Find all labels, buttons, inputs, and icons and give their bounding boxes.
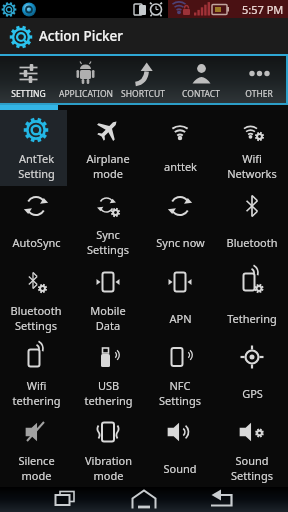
- staticText: Airplane mode: [86, 151, 130, 181]
- staticText: Sync Settings: [87, 227, 129, 257]
- staticText: AntTek Setting: [18, 151, 55, 181]
- button[interactable]: OTHER: [230, 56, 288, 103]
- staticText: USB tethering: [84, 378, 133, 408]
- staticText: GPS: [242, 386, 263, 401]
- staticText: APN: [169, 311, 192, 326]
- button[interactable]: CONTACT: [172, 56, 230, 103]
- button[interactable]: Sound Settings: [216, 412, 288, 487]
- staticText: anttek: [164, 159, 197, 174]
- staticText: NFC Settings: [159, 378, 201, 408]
- button[interactable]: AntTek Setting: [0, 110, 72, 186]
- button[interactable]: APN: [144, 262, 216, 337]
- staticText: Mobile Data: [90, 303, 126, 333]
- staticText: APPLICATION: [59, 88, 113, 100]
- staticText: Vibration mode: [85, 453, 132, 483]
- button[interactable]: AutoSync: [0, 186, 72, 262]
- button[interactable]: Wifi tethering: [0, 337, 72, 412]
- button[interactable]: [96, 487, 192, 512]
- button[interactable]: SHORTCUT: [114, 56, 172, 103]
- staticText: Wifi Networks: [227, 151, 277, 181]
- button[interactable]: Mobile Data: [72, 262, 144, 337]
- button[interactable]: Sync Settings: [72, 186, 144, 262]
- button[interactable]: Tethering: [216, 262, 288, 337]
- button[interactable]: Bluetooth: [216, 186, 288, 262]
- button[interactable]: NFC Settings: [144, 337, 216, 412]
- staticText: Bluetooth: [226, 235, 278, 250]
- button[interactable]: Sync now: [144, 186, 216, 262]
- button[interactable]: Sound: [144, 412, 216, 487]
- staticText: CONTACT: [182, 88, 220, 100]
- staticText: 5:57 PM: [242, 2, 284, 17]
- staticText: Action Picker: [39, 27, 124, 45]
- button[interactable]: [192, 487, 288, 512]
- button[interactable]: Vibration mode: [72, 412, 144, 487]
- button[interactable]: anttek: [144, 110, 216, 186]
- button[interactable]: Bluetooth Settings: [0, 262, 72, 337]
- staticText: OTHER: [245, 88, 273, 100]
- staticText: SHORTCUT: [121, 88, 165, 100]
- button[interactable]: [0, 487, 96, 512]
- staticText: Silence mode: [18, 453, 55, 483]
- staticText: Sound: [163, 461, 197, 476]
- staticText: SETTING: [11, 88, 46, 100]
- staticText: AutoSync: [12, 235, 61, 250]
- button[interactable]: USB tethering: [72, 337, 144, 412]
- button[interactable]: GPS: [216, 337, 288, 412]
- staticText: Wifi tethering: [12, 378, 61, 408]
- staticText: Sound Settings: [231, 453, 273, 483]
- staticText: Sync now: [156, 235, 205, 250]
- button[interactable]: APPLICATION: [57, 56, 114, 103]
- button[interactable]: Airplane mode: [72, 110, 144, 186]
- staticText: Tethering: [227, 311, 277, 326]
- button[interactable]: Wifi Networks: [216, 110, 288, 186]
- staticText: Bluetooth Settings: [10, 303, 62, 333]
- button[interactable]: SETTING: [0, 56, 57, 103]
- button[interactable]: Silence mode: [0, 412, 72, 487]
